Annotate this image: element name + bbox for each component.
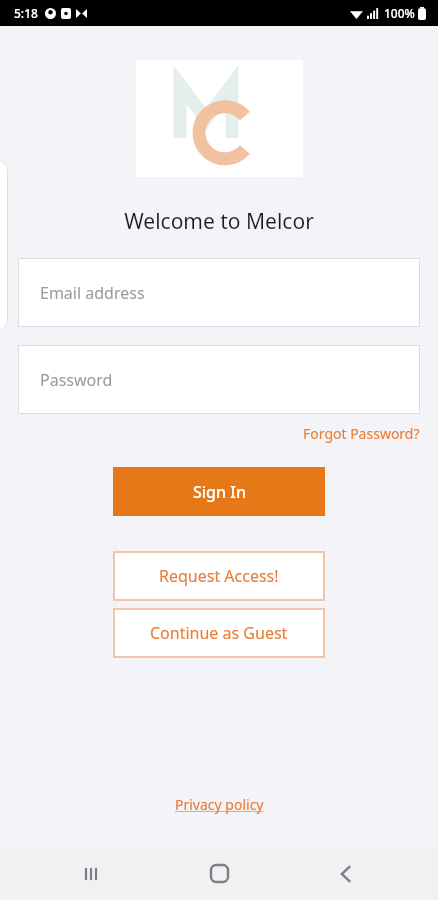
staticText: Request Access!: [159, 565, 279, 587]
button[interactable]: Email address: [18, 258, 420, 327]
button[interactable]: Home: [184, 847, 254, 900]
staticText: 100%: [384, 5, 415, 21]
button[interactable]: Back: [311, 847, 381, 900]
button[interactable]: Request Access!: [113, 551, 325, 601]
staticText: Forgot Password?: [303, 424, 420, 443]
button[interactable]: Continue as Guest: [113, 608, 325, 658]
staticText: Email address: [40, 282, 145, 304]
button[interactable]: Forgot Password?: [303, 422, 420, 445]
staticText: Privacy policy: [175, 795, 264, 814]
staticText: Password: [40, 369, 113, 391]
staticText: Continue as Guest: [150, 622, 288, 644]
staticText: Sign In: [193, 481, 246, 503]
button[interactable]: Sign In: [113, 467, 325, 516]
staticText: Welcome to Melcor: [124, 207, 314, 236]
button[interactable]: Recent apps: [57, 847, 127, 900]
staticText: 5:18: [14, 5, 38, 21]
button[interactable]: Privacy policy: [169, 793, 270, 816]
button[interactable]: Password: [18, 345, 420, 414]
